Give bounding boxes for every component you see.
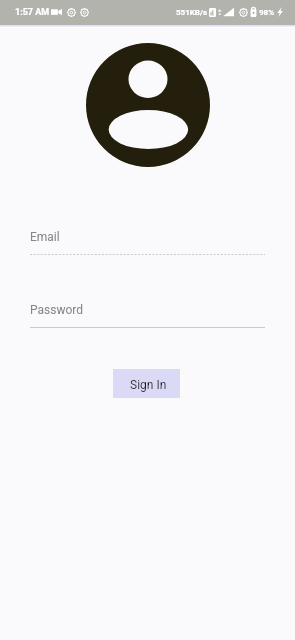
button[interactable]: Password [0, 303, 295, 334]
button[interactable]: Profile picture [86, 43, 210, 167]
staticText: 1:57 AM [15, 7, 50, 18]
staticText: Password [30, 303, 84, 317]
button[interactable]: Email [0, 230, 295, 261]
staticText: 98% [259, 8, 275, 17]
staticText: Email [30, 230, 60, 244]
staticText: Sign In [130, 378, 167, 392]
button[interactable]: Sign In [113, 369, 180, 398]
staticText: 551KB/s [176, 8, 208, 17]
